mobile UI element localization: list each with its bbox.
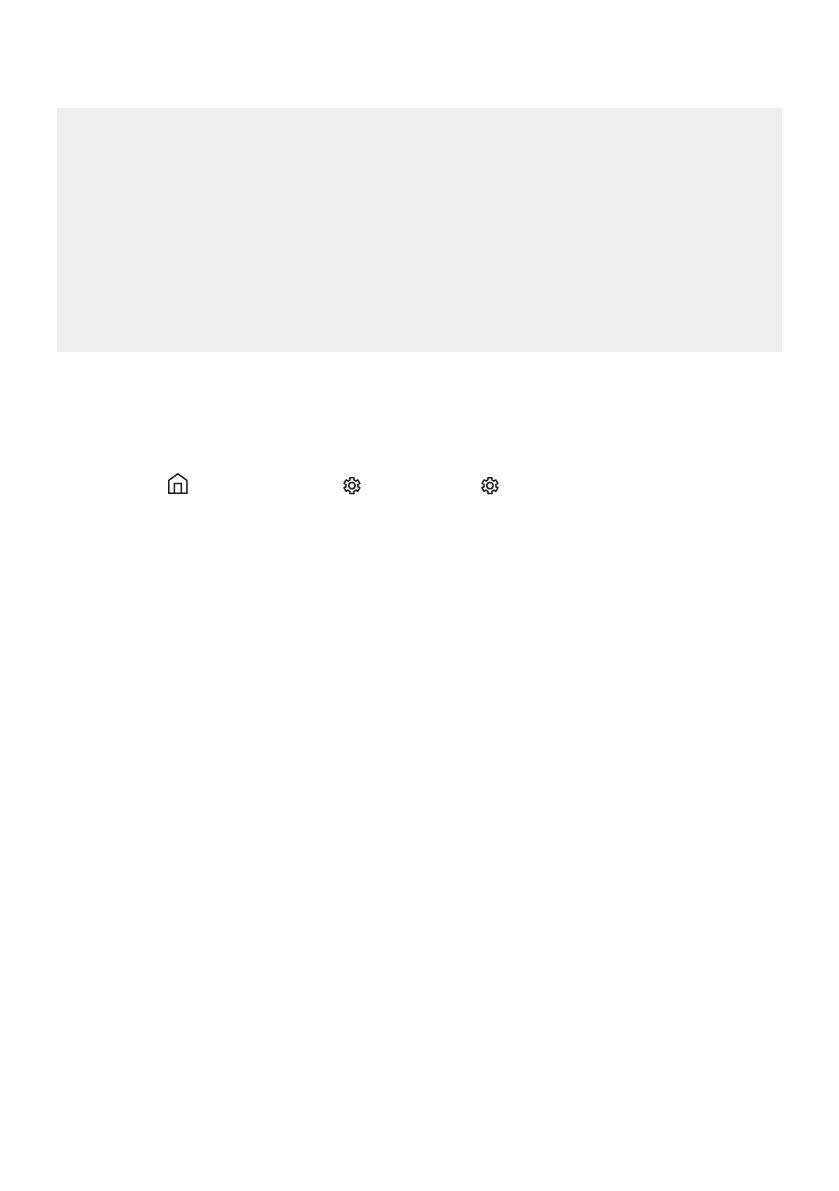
button[interactable]: Home [153, 459, 201, 507]
button[interactable]: Settings [466, 459, 514, 507]
button[interactable]: Settings [328, 459, 376, 507]
